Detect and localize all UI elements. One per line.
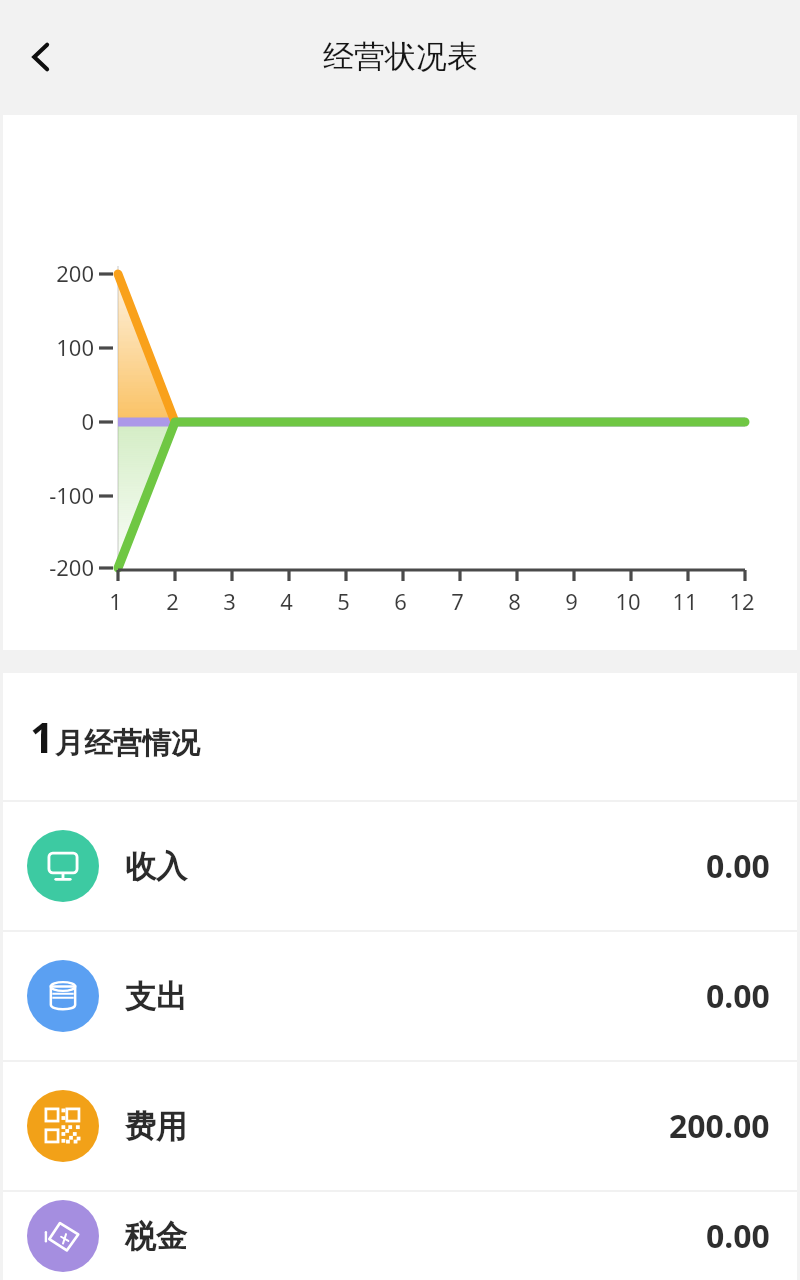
staticText: -200 <box>49 552 94 582</box>
button[interactable]: 收入 <box>3 802 797 930</box>
staticText: 经营状况表 <box>323 37 478 76</box>
staticText: 收入 <box>125 847 187 886</box>
staticText: 200.00 <box>669 1104 770 1148</box>
staticText: 11 <box>672 586 698 616</box>
staticText: 100 <box>56 332 94 362</box>
staticText: 0.00 <box>706 844 770 888</box>
staticText: 8 <box>508 586 521 616</box>
staticText: 0.00 <box>706 974 770 1018</box>
staticText: -100 <box>49 480 94 510</box>
staticText: 0.00 <box>706 1214 770 1258</box>
staticText: 1 <box>30 708 55 765</box>
staticText: 支出 <box>125 977 187 1016</box>
staticText: 9 <box>565 586 578 616</box>
staticText: 10 <box>615 586 641 616</box>
staticText: 4 <box>280 586 293 616</box>
staticText: 12 <box>729 586 755 616</box>
staticText: 月经营情况 <box>55 725 200 762</box>
staticText: 0 <box>81 406 94 436</box>
button[interactable]: 税金 <box>3 1192 797 1280</box>
staticText: 6 <box>394 586 407 616</box>
staticText: 7 <box>451 586 464 616</box>
staticText: 5 <box>337 586 350 616</box>
staticText: 2 <box>166 586 179 616</box>
button[interactable]: 支出 <box>3 932 797 1060</box>
staticText: 1 <box>109 586 122 616</box>
staticText: 3 <box>223 586 236 616</box>
staticText: 200 <box>56 258 94 288</box>
staticText: 税金 <box>125 1217 187 1256</box>
button[interactable]: Back <box>12 28 70 86</box>
button[interactable]: 费用 <box>3 1062 797 1190</box>
staticText: 费用 <box>125 1107 187 1146</box>
